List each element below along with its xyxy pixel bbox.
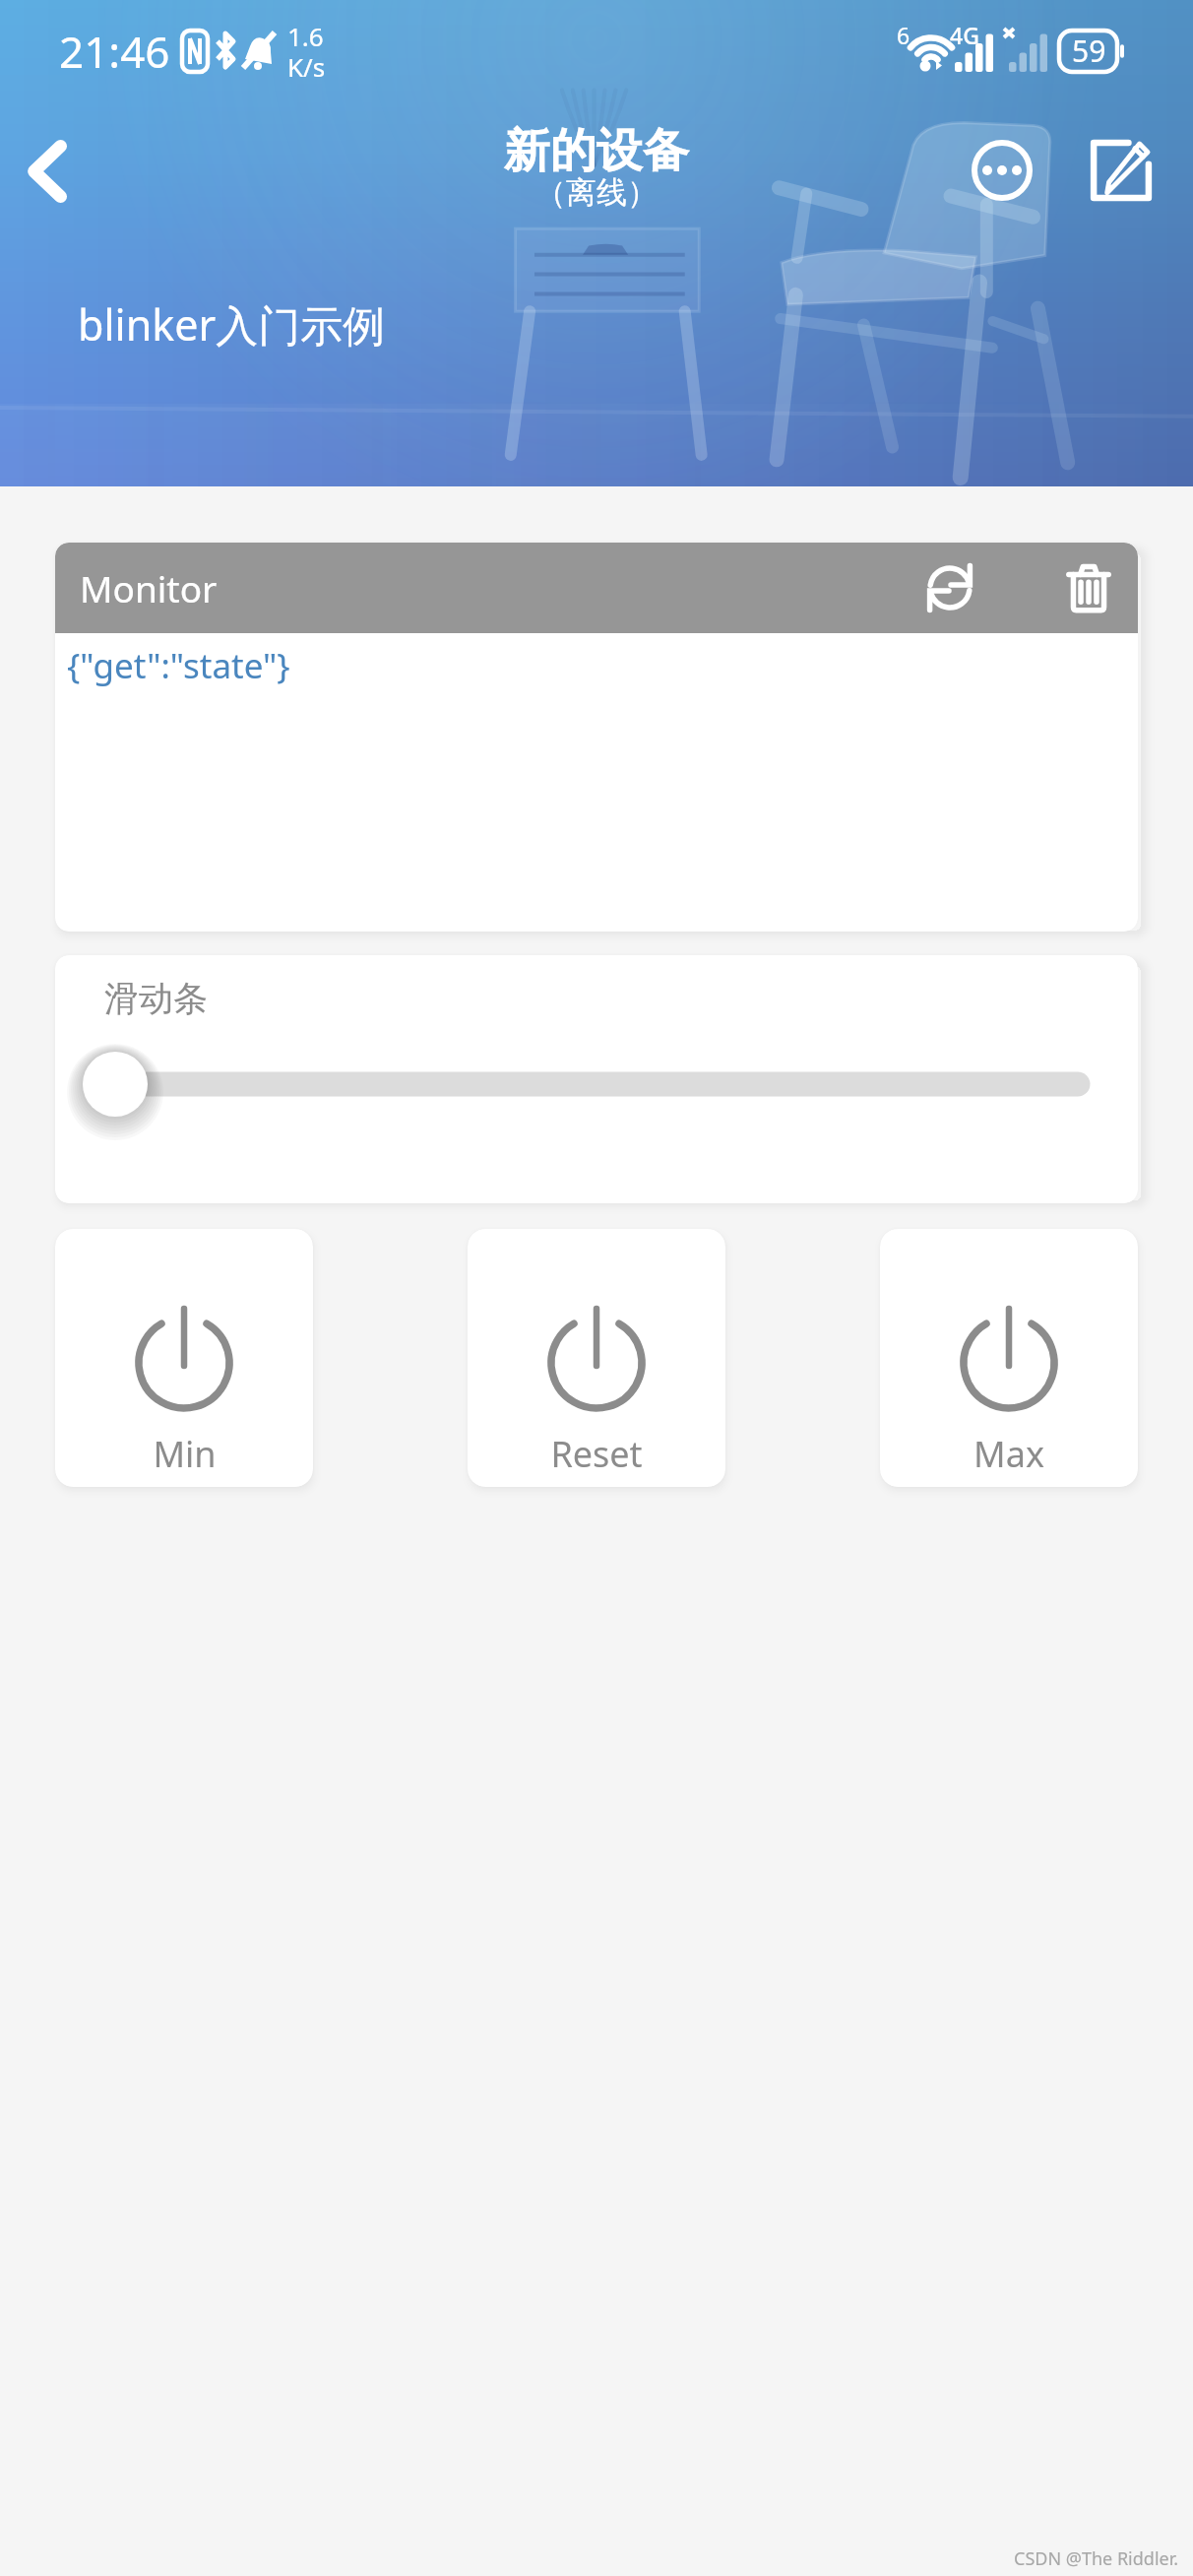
staticText: Monitor <box>80 563 218 612</box>
button[interactable]: Slider <box>55 1045 1138 1124</box>
staticText: K/s <box>287 49 326 84</box>
staticText: Min <box>153 1430 217 1478</box>
staticText: blinker入门示例 <box>78 295 386 354</box>
button[interactable]: Max <box>880 1229 1138 1487</box>
staticText: 21:46 <box>59 22 170 81</box>
staticText: 滑动条 <box>104 977 208 1020</box>
button[interactable]: Delete <box>1051 550 1126 625</box>
button[interactable]: Min <box>55 1229 313 1487</box>
staticText: 6 <box>897 20 910 50</box>
staticText: Reset <box>550 1430 643 1478</box>
button[interactable]: Back <box>4 126 94 217</box>
staticText: 1.6 <box>287 19 324 53</box>
staticText: {"get":"state"} <box>67 642 290 689</box>
staticText: CSDN @The Riddler. <box>1014 2546 1179 2571</box>
staticText: 4G <box>950 20 979 50</box>
staticText: （离线） <box>535 173 658 212</box>
button[interactable]: Reset <box>468 1229 725 1487</box>
button[interactable]: Refresh <box>912 550 987 625</box>
staticText: 新的设备 <box>504 122 689 180</box>
button[interactable]: Edit <box>1078 127 1164 214</box>
staticText: 59 <box>1072 31 1106 71</box>
button[interactable]: More options <box>959 127 1045 214</box>
staticText: Max <box>973 1430 1044 1478</box>
